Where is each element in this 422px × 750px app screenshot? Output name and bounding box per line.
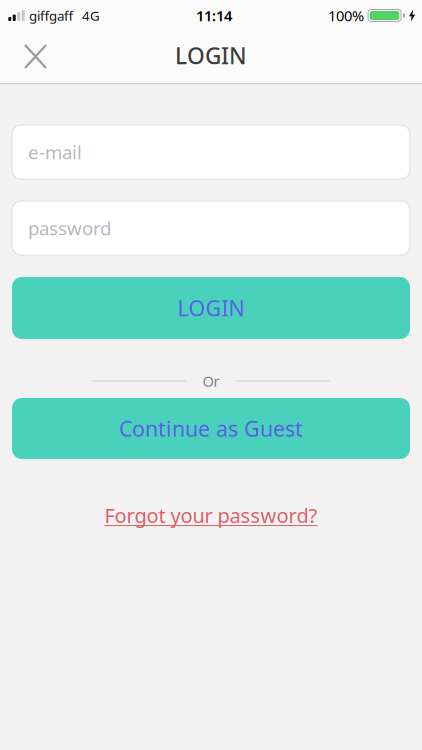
staticText: LOGIN bbox=[177, 294, 244, 322]
staticText: password bbox=[28, 216, 111, 240]
staticText: 100% bbox=[328, 6, 364, 25]
staticText: Forgot your password? bbox=[104, 502, 317, 529]
staticText: 4G bbox=[82, 7, 100, 24]
button[interactable]: Continue as Guest bbox=[12, 398, 410, 459]
staticText: giffgaff bbox=[29, 7, 73, 24]
staticText: 11:14 bbox=[196, 6, 232, 25]
button[interactable]: LOGIN bbox=[12, 277, 410, 339]
button[interactable]: Close bbox=[0, 36, 56, 75]
staticText: e-mail bbox=[28, 140, 82, 164]
button[interactable]: Forgot your password? bbox=[104, 502, 317, 529]
staticText: Continue as Guest bbox=[119, 414, 303, 443]
staticText: LOGIN bbox=[175, 40, 247, 70]
staticText: Or bbox=[202, 371, 219, 391]
